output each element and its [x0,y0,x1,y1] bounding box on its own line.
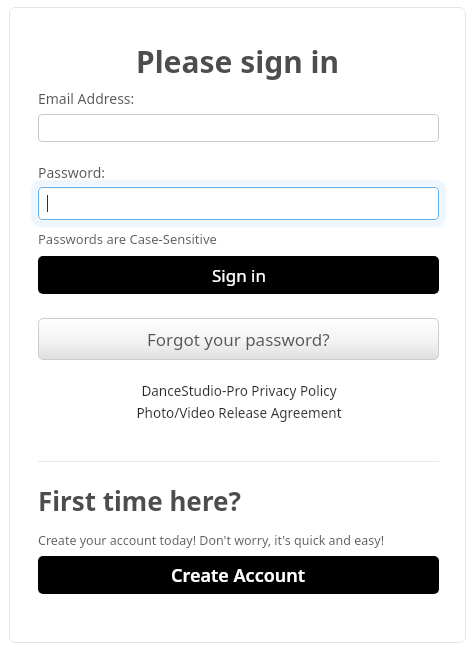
button[interactable] [38,114,439,142]
button[interactable]: Photo/Video Release Agreement [38,404,439,422]
staticText: Create Account [171,563,306,588]
staticText: Photo/Video Release Agreement [136,404,342,422]
staticText: Please sign in [9,41,466,82]
staticText: Email Address: [38,89,135,108]
button[interactable] [38,187,439,220]
staticText: Forgot your password? [147,328,330,351]
staticText: Passwords are Case-Sensitive [38,230,217,248]
staticText: Password: [38,163,106,182]
button[interactable]: Forgot your password? [38,318,439,360]
staticText: First time here? [38,483,241,518]
staticText: Sign in [212,264,266,287]
button[interactable]: Create Account [38,556,439,594]
button[interactable]: Sign in [38,256,439,294]
staticText: Create your account today! Don't worry, … [38,532,385,549]
button[interactable]: DanceStudio-Pro Privacy Policy [38,382,439,400]
staticText: DanceStudio-Pro Privacy Policy [141,382,337,400]
